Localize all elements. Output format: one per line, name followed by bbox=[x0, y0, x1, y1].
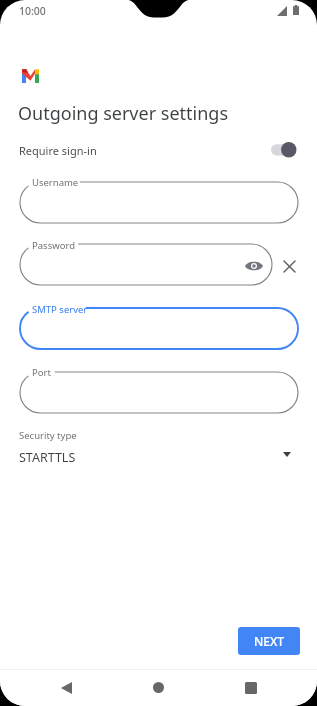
staticText: 10:00 bbox=[19, 4, 46, 18]
staticText: Password bbox=[32, 239, 75, 252]
button[interactable]: Clear password bbox=[278, 255, 301, 278]
button[interactable] bbox=[20, 372, 298, 413]
staticText: Require sign-in bbox=[19, 143, 97, 158]
button[interactable]: Back bbox=[44, 669, 89, 706]
staticText: Port bbox=[32, 366, 51, 379]
button[interactable] bbox=[20, 182, 298, 223]
button[interactable] bbox=[20, 244, 272, 285]
staticText: STARTTLS bbox=[19, 449, 76, 466]
staticText: SMTP server bbox=[32, 303, 88, 316]
button[interactable]: Recent apps bbox=[228, 669, 273, 706]
staticText: Security type bbox=[19, 429, 77, 442]
staticText: Outgoing server settings bbox=[18, 101, 229, 126]
button[interactable]: Require sign-in bbox=[271, 142, 297, 158]
staticText: Username bbox=[32, 176, 79, 189]
button[interactable]: Require sign-in bbox=[0, 136, 317, 164]
staticText: NEXT bbox=[254, 633, 285, 649]
button[interactable]: NEXT bbox=[238, 627, 300, 655]
button[interactable]: Security type bbox=[0, 425, 317, 473]
button[interactable]: Home bbox=[136, 669, 181, 706]
button[interactable] bbox=[20, 308, 298, 349]
